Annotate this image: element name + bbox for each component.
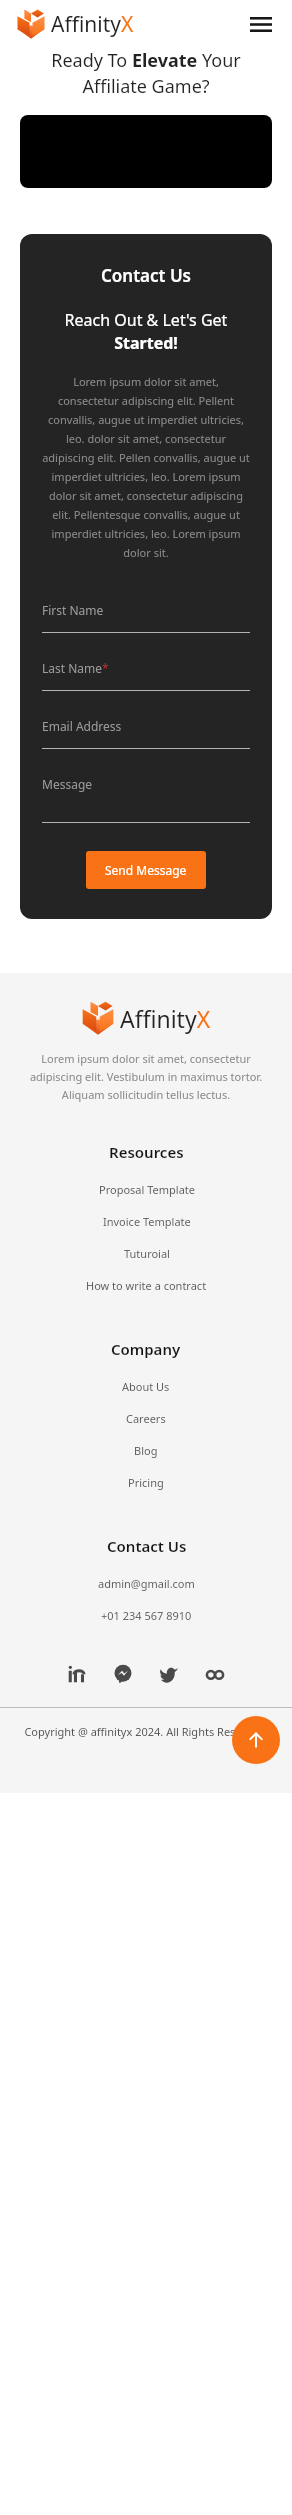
staticText: +01 234 567 8910 [101,1608,192,1623]
staticText: How to write a contract [86,1278,207,1293]
staticText: Lorem ipsum dolor sit amet, consectetur … [24,1051,268,1102]
button[interactable]: Invoice Template [93,1210,201,1233]
button[interactable]: +01 234 567 8910 [91,1604,202,1627]
button[interactable]: Last Name* [42,660,250,691]
staticText: Contact Us [107,1536,187,1556]
staticText: Invoice Template [103,1214,191,1229]
button[interactable]: Send Message [86,851,206,889]
staticText: admin@gmail.com [98,1576,195,1591]
staticText: Company [111,1339,181,1359]
staticText: About Us [122,1379,170,1394]
staticText: Resources [109,1142,184,1162]
staticText: Careers [126,1411,166,1426]
button[interactable]: How to write a contract [76,1274,217,1297]
staticText: Tuturoial [124,1246,170,1261]
button[interactable]: Message [42,776,250,823]
button[interactable]: Careers [116,1407,176,1430]
button[interactable]: Open navigation menu [244,7,278,41]
button[interactable]: Proposal Template [89,1178,205,1201]
staticText: Proposal Template [99,1182,195,1197]
button[interactable]: Play promotional video [20,115,272,188]
staticText: Email Address [42,718,122,734]
staticText: Copyright @ affinityx 2024. All Rights R… [18,1724,274,1739]
button[interactable]: Tuturoial [114,1242,180,1265]
button[interactable]: Meta [200,1659,230,1689]
staticText: Ready To Elevate Your Affiliate Game? [22,48,270,99]
button[interactable]: admin@gmail.com [88,1572,205,1595]
staticText: Pricing [128,1475,164,1490]
button[interactable]: Pricing [118,1471,174,1494]
button[interactable]: Email Address [42,718,250,749]
button[interactable]: Scroll to top [232,1716,280,1764]
staticText: First Name [42,602,104,618]
button[interactable]: About Us [112,1375,180,1398]
staticText: AffinityX [120,1003,211,1034]
staticText: Last Name* [42,660,109,676]
button[interactable]: Messenger [108,1659,138,1689]
button[interactable]: LinkedIn [62,1659,92,1689]
button[interactable]: First Name [42,602,250,633]
staticText: Contact Us [42,264,250,287]
staticText: Send Message [105,862,187,878]
staticText: Lorem ipsum dolor sit amet, consectetur … [42,374,250,560]
staticText: Blog [134,1443,158,1458]
staticText: AffinityX [51,10,134,39]
staticText: Reach Out & Let's Get Started! [42,309,250,354]
button[interactable]: Blog [124,1439,168,1462]
button[interactable]: Twitter [154,1659,184,1689]
staticText: Message [42,776,93,792]
